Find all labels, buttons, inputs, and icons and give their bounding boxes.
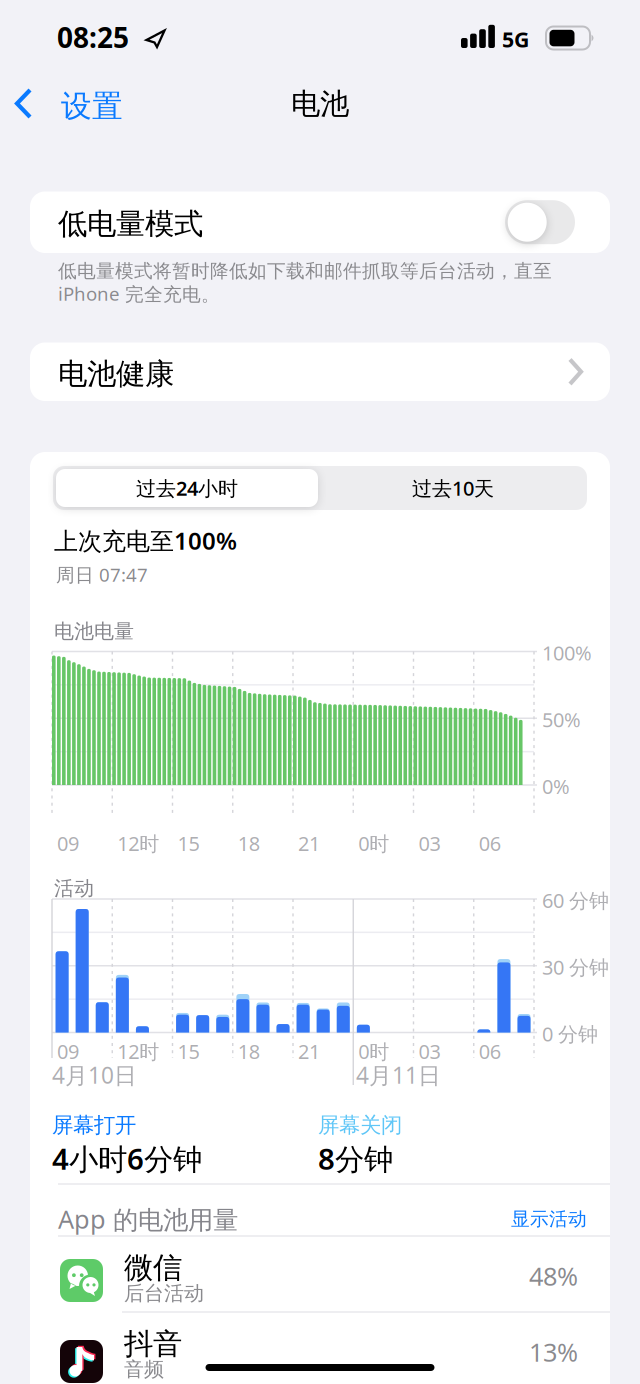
staticText: 09	[57, 1038, 79, 1065]
staticText: 活动	[54, 876, 94, 901]
staticText: 屏幕打开	[52, 1112, 136, 1138]
staticText: 上次充电至100%	[54, 524, 237, 556]
staticText: 电池	[291, 86, 349, 122]
button[interactable]: 过去24小时	[56, 469, 318, 507]
staticText: 电池健康	[58, 356, 174, 392]
button[interactable]: 电池健康	[30, 342, 610, 401]
staticText: 周日 07:47	[56, 562, 148, 587]
staticText: 电池电量	[54, 619, 134, 644]
staticText: 21	[298, 830, 320, 857]
staticText: 4月11日	[356, 1060, 441, 1090]
button[interactable]: 低电量模式开关	[505, 200, 575, 244]
staticText: 低电量模式	[58, 206, 203, 242]
staticText: 8分钟	[318, 1139, 393, 1178]
staticText: 显示活动	[511, 1207, 587, 1230]
staticText: 08:25	[57, 18, 129, 56]
staticText: 0时	[358, 830, 389, 857]
staticText: 13%	[529, 1335, 578, 1369]
staticText: 48%	[529, 1259, 578, 1293]
staticText: 12时	[117, 830, 159, 857]
button[interactable]: 返回设置	[0, 0, 140, 50]
staticText: 18	[238, 830, 260, 857]
staticText: 100%	[542, 639, 592, 666]
staticText: 06	[479, 1038, 501, 1065]
staticText: 0时	[358, 1038, 389, 1065]
staticText: 06	[479, 830, 501, 857]
staticText: 18	[238, 1038, 260, 1065]
staticText: 30 分钟	[542, 954, 609, 980]
staticText: 屏幕关闭	[318, 1112, 402, 1138]
staticText: 4小时6分钟	[52, 1139, 202, 1178]
staticText: 过去24小时	[136, 475, 238, 501]
button[interactable]: 抖音	[30, 1312, 610, 1384]
staticText: 09	[57, 830, 79, 857]
staticText: 微信	[124, 1250, 182, 1286]
staticText: 0%	[542, 773, 570, 800]
button[interactable]: 过去10天	[322, 469, 584, 507]
staticText: 0 分钟	[542, 1020, 598, 1047]
button[interactable]: 微信	[30, 1236, 610, 1312]
button[interactable]: 显示活动	[447, 1202, 587, 1236]
staticText: 21	[298, 1038, 320, 1065]
staticText: 03	[418, 830, 440, 857]
staticText: 设置	[61, 87, 123, 125]
staticText: 03	[418, 1038, 440, 1065]
staticText: 后台活动	[124, 1281, 204, 1306]
staticText: 音频	[124, 1357, 164, 1382]
staticText: 4月10日	[52, 1060, 137, 1090]
staticText: 50%	[542, 706, 581, 733]
staticText: 15	[177, 1038, 199, 1065]
staticText: 过去10天	[412, 475, 494, 501]
staticText: App 的电池用量	[58, 1202, 238, 1236]
staticText: 低电量模式将暂时降低如下载和邮件抓取等后台活动，直至	[58, 259, 552, 282]
staticText: 12时	[117, 1038, 159, 1065]
staticText: 60 分钟	[542, 887, 609, 914]
staticText: iPhone 完全充电。	[58, 281, 220, 306]
staticText: 15	[177, 830, 199, 857]
staticText: 抖音	[124, 1326, 182, 1362]
staticText: 5G	[502, 25, 529, 53]
